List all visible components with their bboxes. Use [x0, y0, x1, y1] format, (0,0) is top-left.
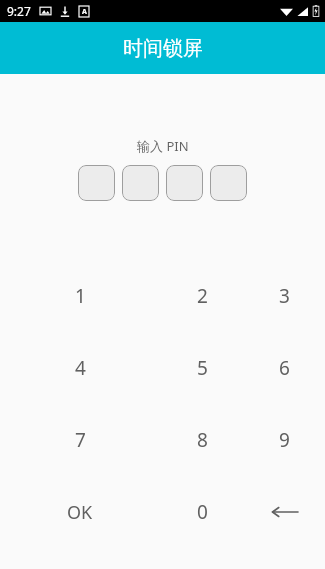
button[interactable]: 9 [244, 404, 325, 476]
staticText: 6 [279, 355, 290, 381]
staticText: 时间锁屏 [123, 36, 203, 61]
staticText: OK [67, 500, 93, 525]
button[interactable] [78, 165, 115, 201]
staticText: 1 [75, 283, 86, 309]
staticText: 4 [75, 355, 86, 381]
button[interactable]: 6 [244, 332, 325, 404]
button[interactable]: 2 [160, 260, 244, 332]
staticText: 9:27 [7, 3, 31, 19]
button[interactable]: 0 [160, 476, 244, 548]
button[interactable]: 1 [0, 260, 160, 332]
button[interactable]: 4 [0, 332, 160, 404]
button[interactable] [166, 165, 203, 201]
staticText: 9 [279, 427, 290, 453]
staticText: 输入 PIN [137, 137, 189, 155]
button[interactable]: 7 [0, 404, 160, 476]
button[interactable]: 5 [160, 332, 244, 404]
staticText: A [82, 7, 87, 17]
button[interactable]: 8 [160, 404, 244, 476]
staticText: 3 [279, 283, 290, 309]
staticText: 0 [197, 499, 208, 525]
staticText: 7 [75, 427, 86, 453]
staticText: 2 [197, 283, 208, 309]
button[interactable] [122, 165, 159, 201]
staticText: 8 [197, 427, 208, 453]
button[interactable]: Backspace [244, 476, 325, 548]
button[interactable]: OK [0, 476, 160, 548]
button[interactable] [210, 165, 247, 201]
staticText: 5 [197, 355, 208, 381]
button[interactable]: 3 [244, 260, 325, 332]
